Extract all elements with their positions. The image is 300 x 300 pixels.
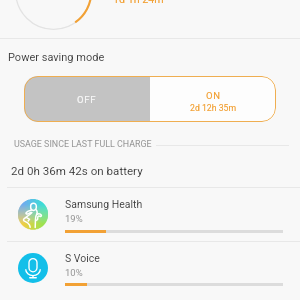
staticText: 10% <box>65 267 83 278</box>
button[interactable]: OFF <box>24 76 150 122</box>
staticText: 2d 12h 35m <box>190 103 237 113</box>
staticText: S Voice <box>65 252 100 264</box>
staticText: 2d 0h 36m 42s on battery <box>11 164 143 178</box>
staticText: USAGE SINCE LAST FULL CHARGE <box>14 139 152 149</box>
staticText: OFF <box>77 94 97 105</box>
button[interactable]: Samsung Health <box>0 188 300 241</box>
button[interactable]: S Voice <box>0 242 300 295</box>
staticText: Samsung Health <box>65 198 143 210</box>
staticText: 1d 1h 24m <box>113 0 164 6</box>
staticText: ON <box>206 90 221 101</box>
button[interactable]: ON <box>150 76 276 122</box>
staticText: Power saving mode <box>8 51 105 64</box>
staticText: 19% <box>65 213 83 224</box>
